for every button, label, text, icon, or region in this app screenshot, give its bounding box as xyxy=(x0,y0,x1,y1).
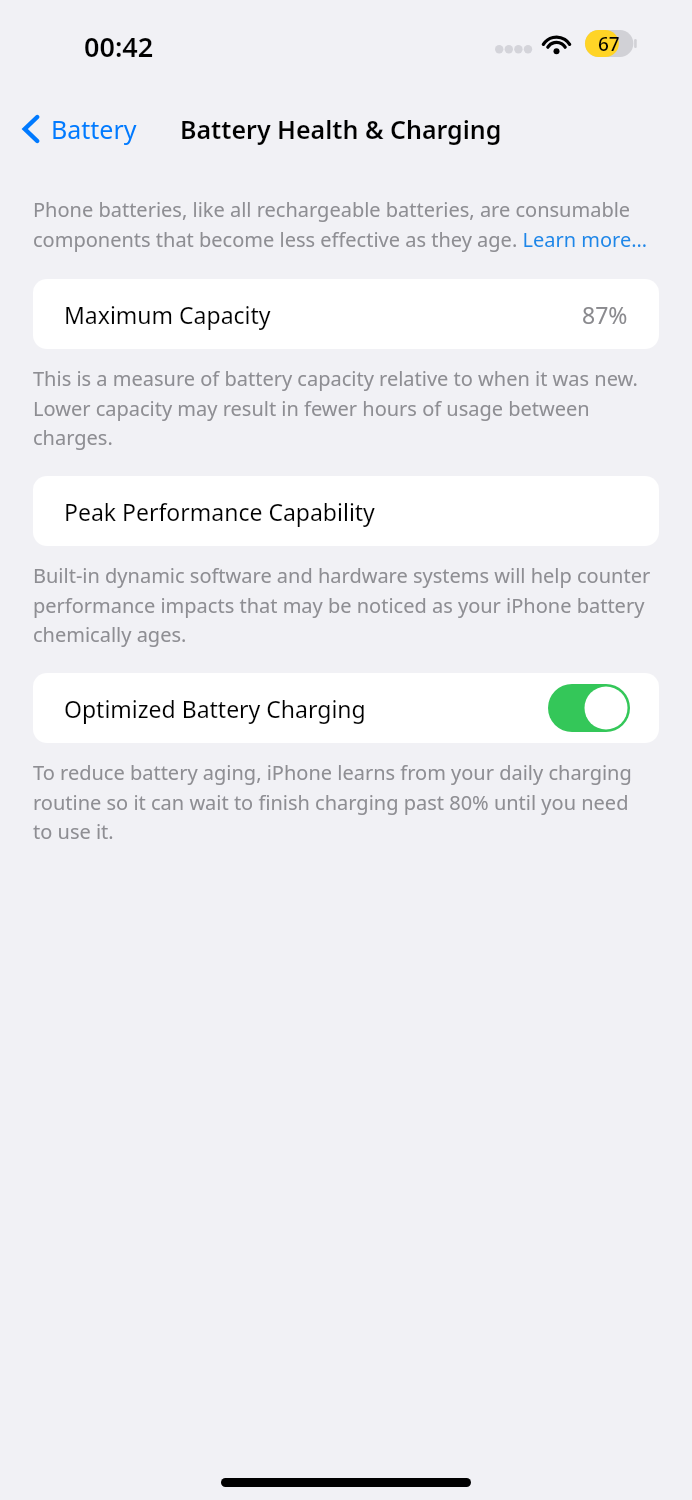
staticText: Maximum Capacity xyxy=(64,299,582,330)
staticText: Peak Performance Capability xyxy=(64,496,375,527)
staticText: Built-in dynamic software and hardware s… xyxy=(33,562,652,648)
button[interactable]: Maximum Capacity xyxy=(33,279,659,349)
staticText: 87% xyxy=(582,299,628,330)
button[interactable]: Battery xyxy=(14,108,141,150)
other: Battery 67 percent, Low Power Mode xyxy=(585,30,637,57)
staticText: Battery xyxy=(51,112,137,146)
staticText: 67 xyxy=(598,31,620,57)
staticText: 00:42 xyxy=(84,28,154,65)
button[interactable]: Peak Performance Capability xyxy=(33,476,659,546)
button[interactable]: Optimized Battery Charging xyxy=(33,673,659,743)
staticText: Battery Health & Charging xyxy=(180,112,502,146)
button[interactable]: Phone batteries, like all rechargeable b… xyxy=(33,196,652,253)
staticText: To reduce battery aging, iPhone learns f… xyxy=(33,759,652,845)
button[interactable]: Optimized Battery Charging, on xyxy=(548,684,630,732)
staticText: This is a measure of battery capacity re… xyxy=(33,365,652,451)
staticText: Optimized Battery Charging xyxy=(64,693,548,724)
